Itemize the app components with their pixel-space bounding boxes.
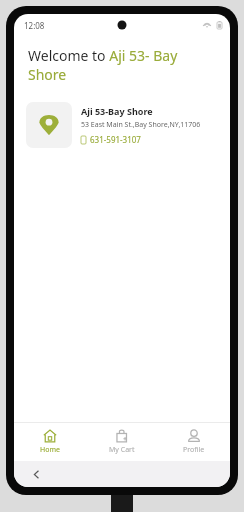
- staticText: Welcome to Aji 53- Bay Shore: [28, 46, 216, 84]
- staticText: 53 East Main St.,Bay Shore,NY,11706: [81, 120, 201, 130]
- button[interactable]: My Cart: [86, 423, 158, 461]
- button[interactable]: Home: [14, 423, 86, 461]
- staticText: Aji 53-Bay Shore: [81, 105, 153, 117]
- button[interactable]: Back: [26, 464, 46, 484]
- staticText: My Cart: [109, 445, 135, 455]
- button[interactable]: Profile: [158, 423, 230, 461]
- staticText: 631-591-3107: [90, 134, 141, 145]
- staticText: Home: [40, 445, 60, 455]
- button[interactable]: Aji 53-Bay Shore: [20, 94, 224, 156]
- staticText: Profile: [183, 445, 205, 455]
- staticText: 12:08: [24, 20, 45, 31]
